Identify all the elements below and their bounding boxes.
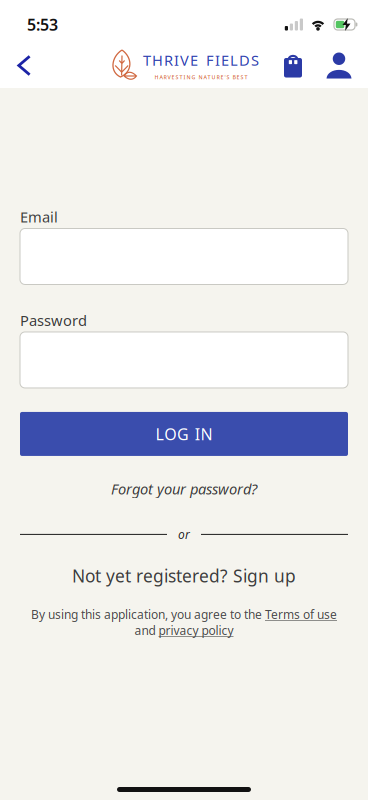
staticText: Terms of use xyxy=(265,606,337,622)
button[interactable]: Forgot your password? xyxy=(111,479,257,498)
button[interactable]: Not yet registered? Sign up xyxy=(72,564,296,587)
staticText: LOG IN xyxy=(155,423,212,444)
button[interactable]: Cart xyxy=(284,53,302,77)
staticText: Not yet registered? Sign up xyxy=(72,564,296,587)
button[interactable]: Back xyxy=(0,54,31,76)
staticText: or xyxy=(178,526,190,542)
staticText: By using this application, you agree to … xyxy=(31,606,265,622)
button[interactable]: Thrive Fields Home xyxy=(109,49,259,82)
staticText: privacy policy xyxy=(158,622,233,638)
staticText: and xyxy=(134,622,158,638)
button[interactable]: privacy policy xyxy=(158,622,233,638)
staticText: Password xyxy=(20,310,87,330)
button[interactable]: Account xyxy=(302,52,368,78)
staticText: 5:53 xyxy=(27,14,58,35)
staticText: Forgot your password? xyxy=(111,479,257,498)
staticText: Email xyxy=(20,207,58,226)
button[interactable]: Terms of use xyxy=(265,606,337,622)
staticText: HARVESTING NATURE'S BEST xyxy=(154,74,247,81)
button[interactable]: LOG IN xyxy=(20,412,348,456)
staticText: T H R I V E F I E L D S xyxy=(143,50,259,70)
